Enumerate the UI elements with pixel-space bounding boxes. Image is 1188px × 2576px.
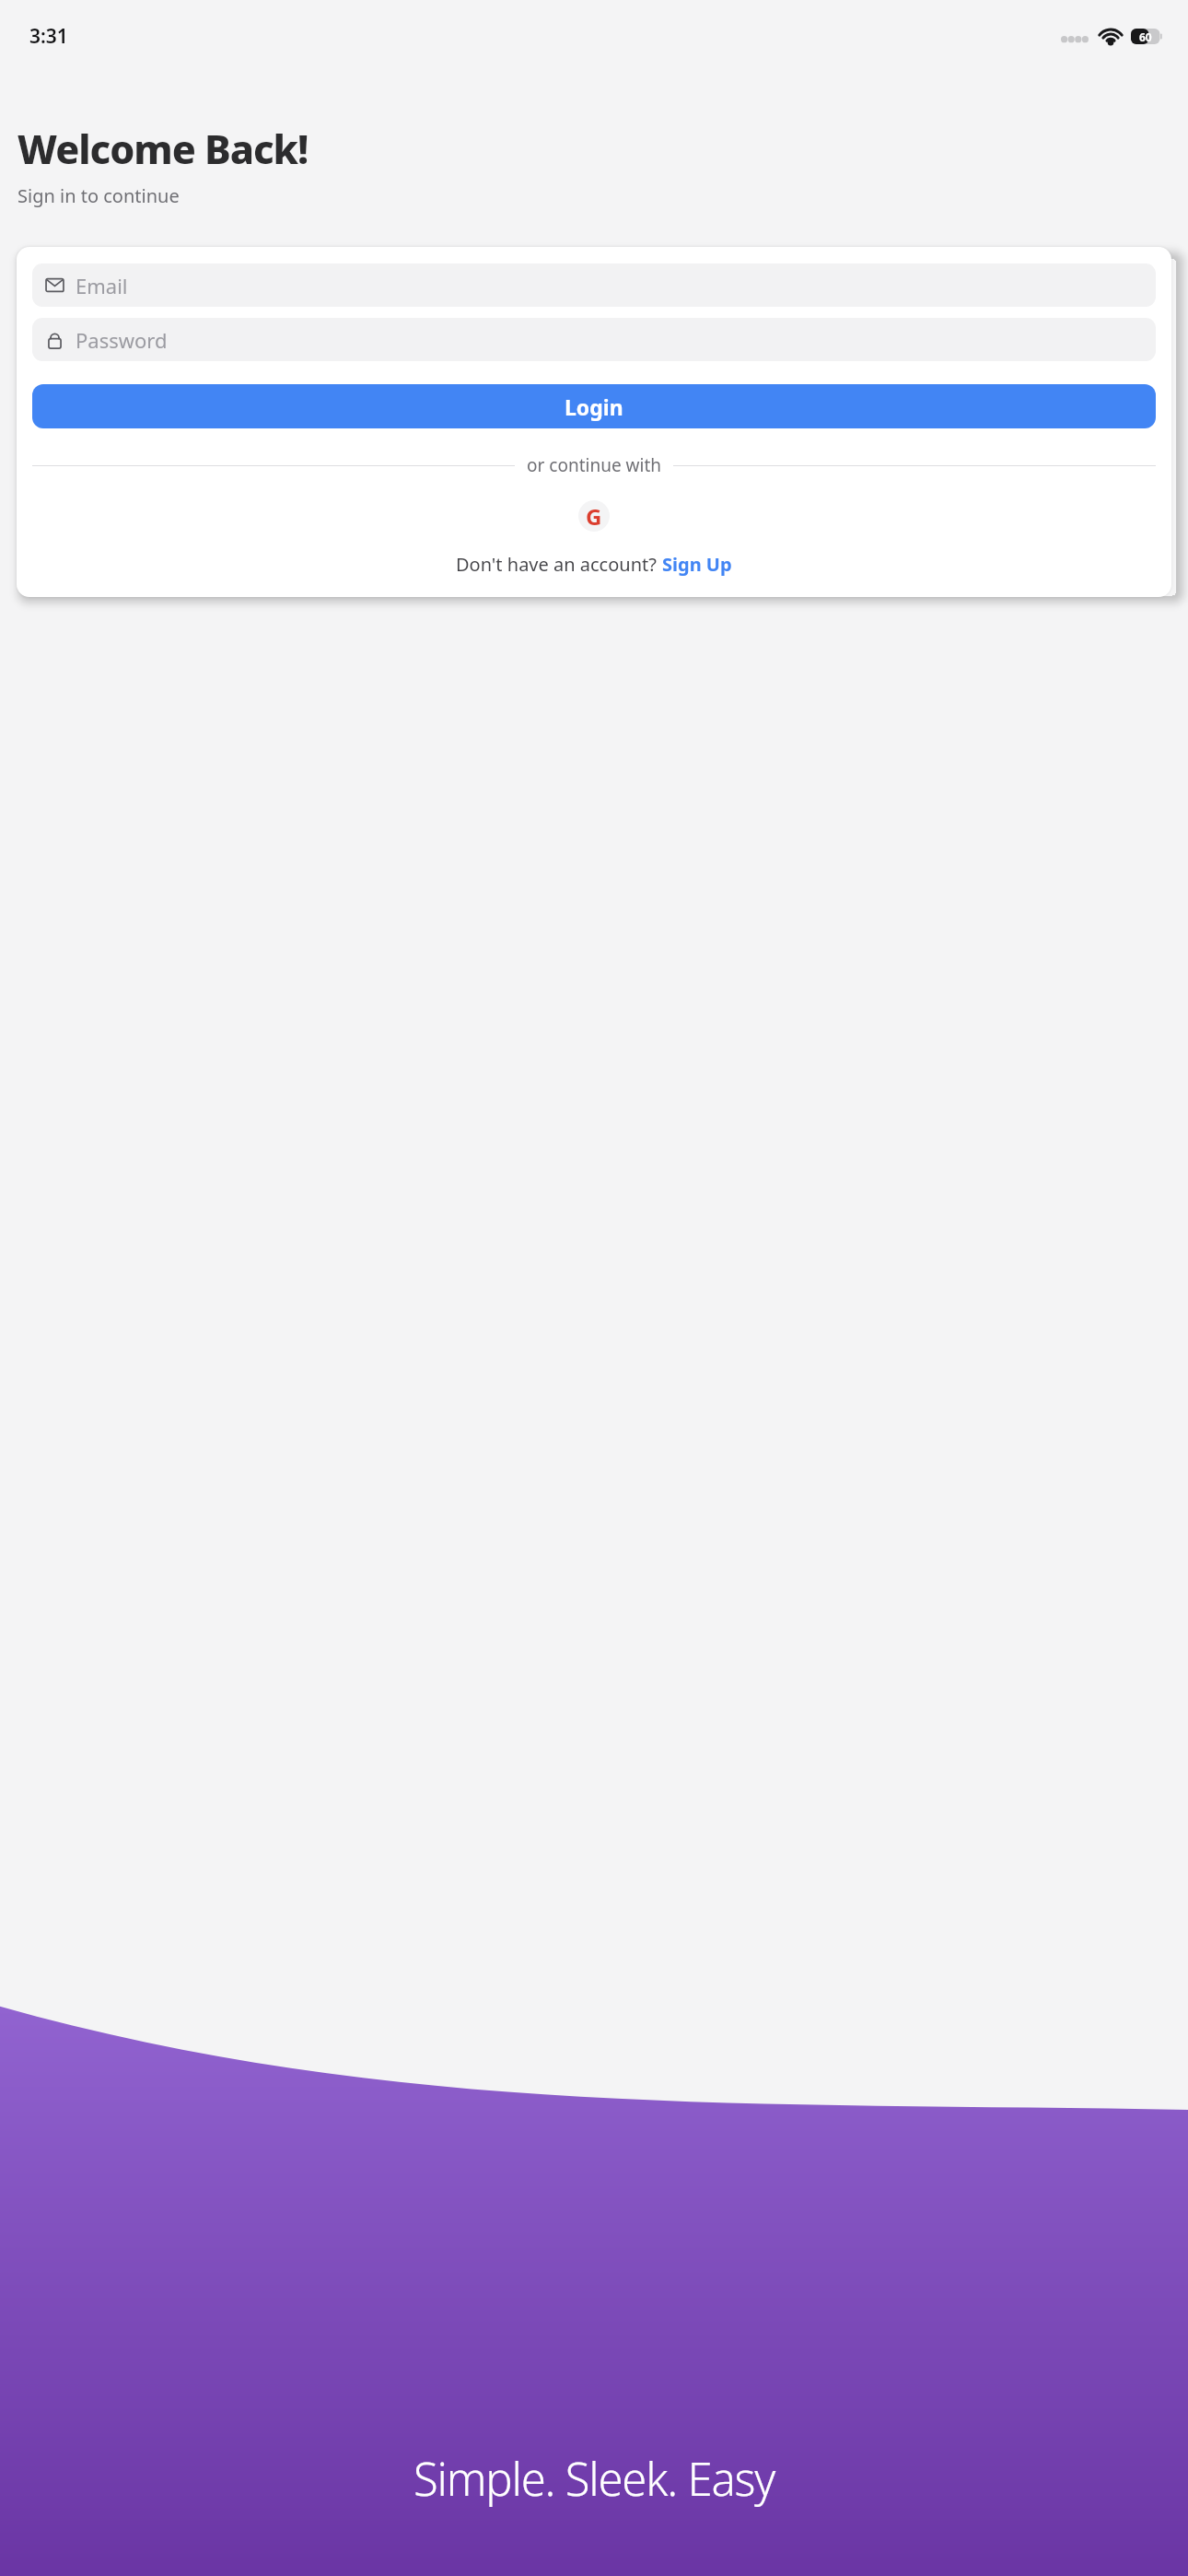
button[interactable]: Login [32,384,1156,428]
staticText: G [586,501,602,532]
staticText: 3:31 [29,23,68,50]
button[interactable]: Sign in with Google [578,500,610,532]
button[interactable]: Password [32,318,1156,361]
staticText: Login [565,392,623,421]
staticText: Don't have an account? [456,552,662,577]
staticText: Sign Up [662,552,732,577]
button[interactable]: Sign Up [662,552,732,577]
staticText: 60 [1139,29,1152,44]
staticText: Sign in to continue [17,183,180,208]
staticText: Email [76,272,128,299]
staticText: Password [76,326,168,354]
button[interactable]: Email [32,263,1156,307]
staticText: or continue with [527,453,661,477]
staticText: Simple. Sleek. Easy [0,2448,1188,2510]
staticText: Welcome Back! [17,122,309,176]
